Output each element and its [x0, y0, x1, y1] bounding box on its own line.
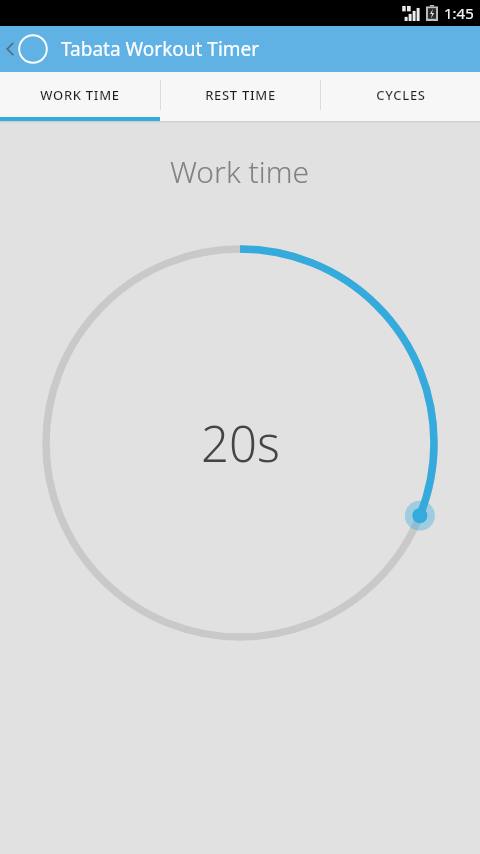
- button[interactable]: REST TIME: [161, 72, 320, 117]
- button[interactable]: WORK TIME: [0, 72, 160, 117]
- button[interactable]: Navigate up: [0, 26, 52, 72]
- staticText: WORK TIME: [40, 86, 120, 104]
- staticText: CYCLES: [376, 86, 426, 104]
- staticText: 20s: [201, 410, 280, 477]
- staticText: REST TIME: [205, 86, 276, 104]
- staticText: 1:45: [444, 3, 474, 23]
- staticText: Work time: [170, 151, 310, 192]
- button[interactable]: 20s: [34, 237, 446, 649]
- button[interactable]: CYCLES: [321, 72, 480, 117]
- staticText: Tabata Workout Timer: [61, 36, 260, 62]
